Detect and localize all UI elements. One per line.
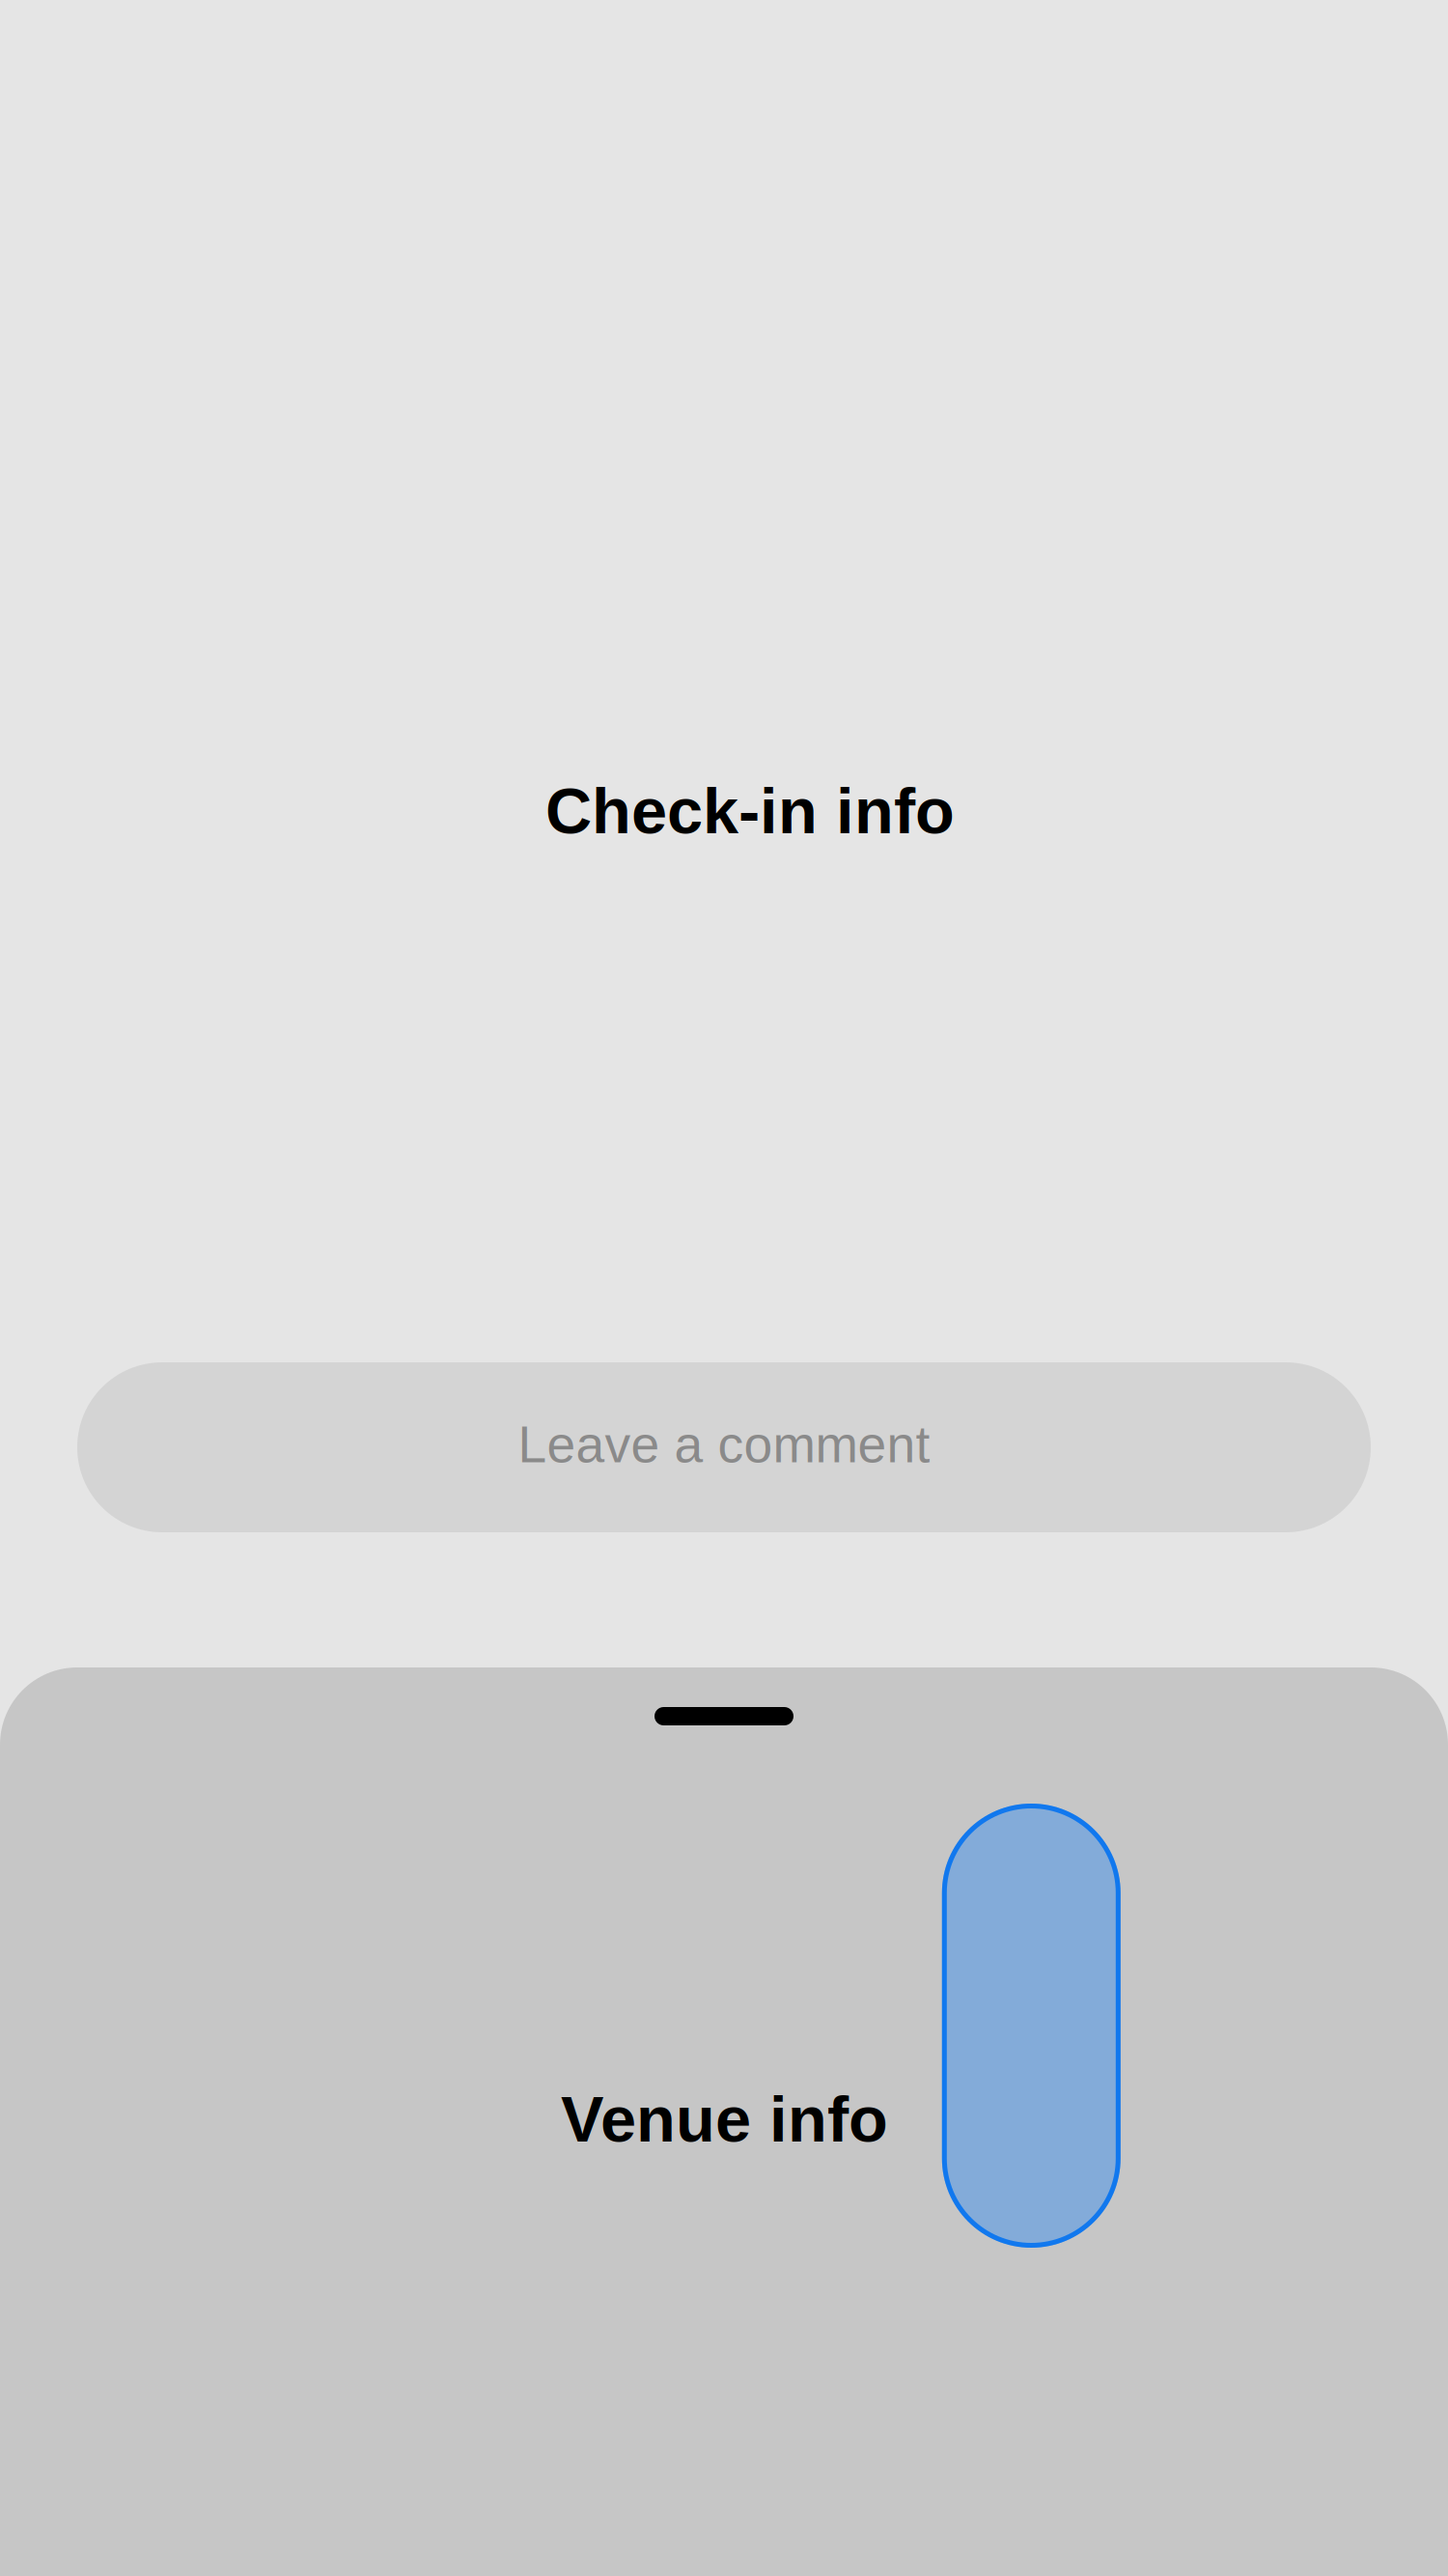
button[interactable]: Selected venue <box>942 1804 1121 2248</box>
staticText: Leave a comment <box>518 1416 930 1473</box>
staticText: Check-in info <box>545 775 955 847</box>
button[interactable]: Leave a comment <box>77 1362 1371 1532</box>
staticText: Venue info <box>561 2083 888 2155</box>
button[interactable]: Resize sheet <box>654 1707 794 1725</box>
